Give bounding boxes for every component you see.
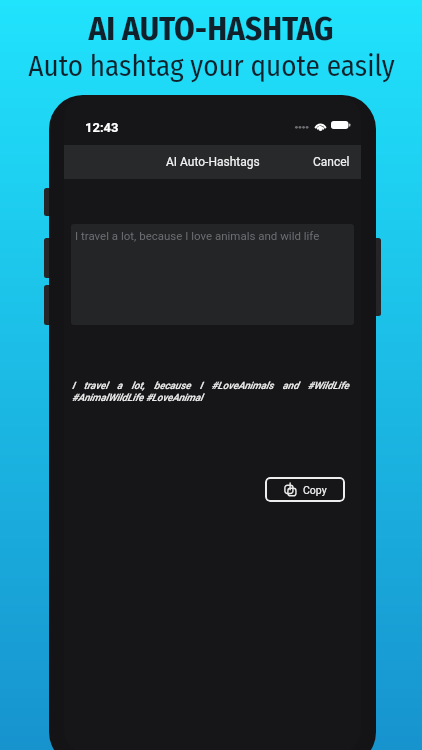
staticText: AI AUTO-HASHTAG xyxy=(88,9,334,49)
staticText: 12:43 xyxy=(85,120,119,135)
staticText: I travel a lot, because I #LoveAnimals a… xyxy=(72,380,349,404)
staticText: AI Auto-Hashtags xyxy=(166,155,260,169)
button[interactable]: Copy xyxy=(265,477,345,502)
other: Copy xyxy=(284,482,297,497)
button[interactable]: I travel a lot, because I love animals a… xyxy=(71,224,354,325)
staticText: Copy xyxy=(303,484,327,496)
staticText: Auto hashtag your quote easily xyxy=(28,49,395,84)
button[interactable]: Cancel xyxy=(302,147,361,177)
staticText: I travel a lot, because I love animals a… xyxy=(75,229,320,242)
staticText: Cancel xyxy=(313,155,350,169)
